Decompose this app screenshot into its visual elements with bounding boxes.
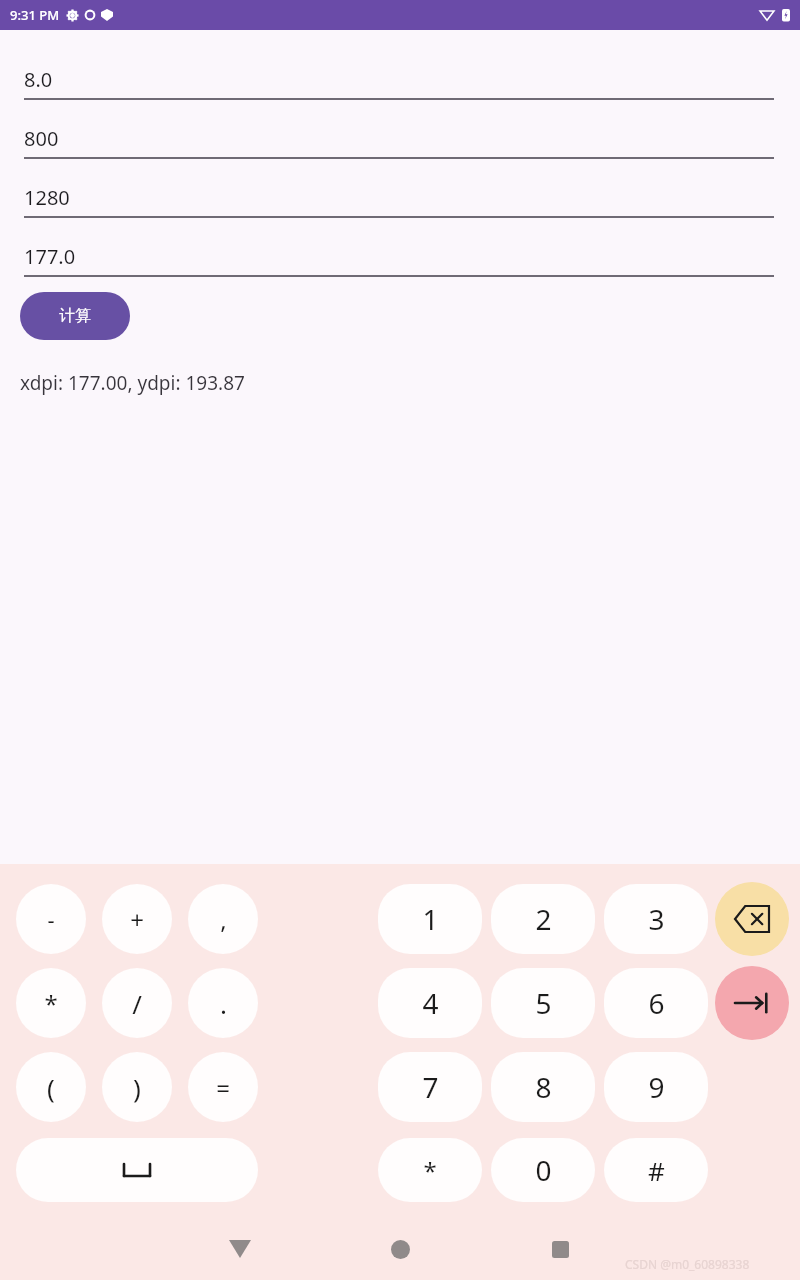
staticText: 9 xyxy=(648,1068,665,1106)
button[interactable]: Home xyxy=(378,1227,422,1271)
staticText: CSDN @m0_60898338 xyxy=(625,1256,750,1272)
button[interactable]: 1280 xyxy=(24,184,774,218)
staticText: + xyxy=(130,903,144,936)
staticText: . xyxy=(220,986,227,1021)
button[interactable]: ) xyxy=(102,1052,172,1122)
staticText: 1 xyxy=(422,900,439,938)
staticText: 7 xyxy=(422,1068,439,1106)
button[interactable]: = xyxy=(188,1052,258,1122)
button[interactable]: - xyxy=(16,884,86,954)
button[interactable]: / xyxy=(102,968,172,1038)
staticText: ) xyxy=(133,1070,141,1105)
button[interactable]: 0 xyxy=(491,1138,595,1202)
button[interactable]: Space xyxy=(16,1138,258,1202)
button[interactable]: ( xyxy=(16,1052,86,1122)
button[interactable]: * xyxy=(16,968,86,1038)
button[interactable]: Recents xyxy=(538,1227,582,1271)
button[interactable]: # xyxy=(604,1138,708,1202)
staticText: - xyxy=(47,904,55,934)
staticText: 1280 xyxy=(24,184,70,211)
staticText: * xyxy=(423,1154,437,1187)
staticText: 计算 xyxy=(59,306,91,326)
staticText: 6 xyxy=(648,984,665,1022)
button[interactable]: 9 xyxy=(604,1052,708,1122)
button[interactable]: 8 xyxy=(491,1052,595,1122)
button[interactable]: Back xyxy=(218,1227,262,1271)
button[interactable]: 计算 xyxy=(20,292,130,340)
button[interactable]: 7 xyxy=(378,1052,482,1122)
button[interactable]: , xyxy=(188,884,258,954)
button[interactable]: * xyxy=(378,1138,482,1202)
staticText: 5 xyxy=(535,984,552,1022)
staticText: 3 xyxy=(648,900,665,938)
staticText: 2 xyxy=(535,900,552,938)
staticText: , xyxy=(220,903,227,936)
staticText: # xyxy=(648,1153,665,1188)
button[interactable]: 1 xyxy=(378,884,482,954)
button[interactable]: Enter xyxy=(715,966,789,1040)
button[interactable]: 4 xyxy=(378,968,482,1038)
button[interactable]: + xyxy=(102,884,172,954)
staticText: 0 xyxy=(535,1151,552,1189)
staticText: 4 xyxy=(422,984,439,1022)
button[interactable]: Backspace xyxy=(715,882,789,956)
staticText: 800 xyxy=(24,125,59,152)
staticText: = xyxy=(216,1071,230,1104)
staticText: 8.0 xyxy=(24,66,53,93)
staticText: / xyxy=(132,986,142,1021)
button[interactable]: 2 xyxy=(491,884,595,954)
button[interactable]: 6 xyxy=(604,968,708,1038)
button[interactable]: . xyxy=(188,968,258,1038)
staticText: 177.0 xyxy=(24,243,76,270)
staticText: ( xyxy=(47,1070,55,1105)
staticText: 8 xyxy=(535,1068,552,1106)
button[interactable]: 8.0 xyxy=(24,66,774,100)
button[interactable]: 5 xyxy=(491,968,595,1038)
button[interactable]: 3 xyxy=(604,884,708,954)
button[interactable]: 800 xyxy=(24,125,774,159)
staticText: 9:31 PM xyxy=(10,6,60,24)
staticText: * xyxy=(44,987,58,1020)
button[interactable]: 177.0 xyxy=(24,243,774,277)
staticText: xdpi: 177.00, ydpi: 193.87 xyxy=(20,370,245,396)
